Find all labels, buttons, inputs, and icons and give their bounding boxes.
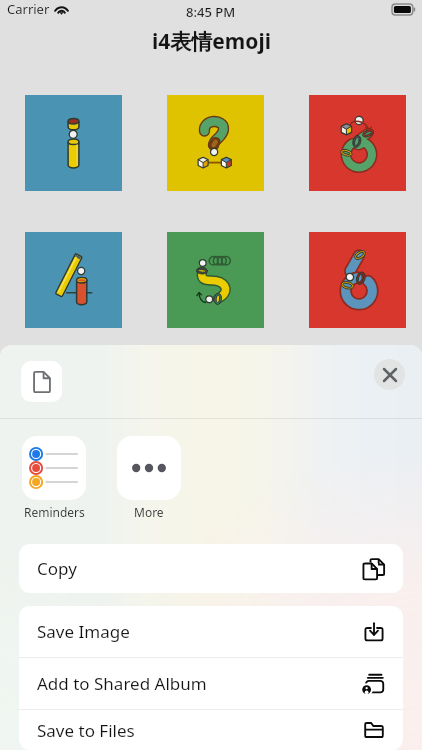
button[interactable]: Save to Files: [19, 710, 403, 750]
button[interactable]: [117, 436, 181, 500]
button[interactable]: [167, 232, 264, 328]
staticText: Copy: [37, 557, 77, 580]
button[interactable]: Close: [374, 359, 405, 390]
staticText: Add to Shared Album: [37, 672, 207, 695]
button[interactable]: Copy: [19, 544, 403, 593]
button[interactable]: Save Image: [19, 606, 403, 657]
button[interactable]: Document: [21, 361, 62, 402]
staticText: Save Image: [37, 620, 130, 643]
button[interactable]: [309, 95, 406, 191]
staticText: Carrier: [7, 0, 50, 18]
staticText: i4表情emoji: [152, 27, 271, 56]
staticText: Save to Files: [37, 719, 135, 742]
button[interactable]: [25, 232, 122, 328]
staticText: More: [134, 504, 164, 520]
staticText: Reminders: [24, 504, 85, 520]
button[interactable]: [22, 436, 86, 500]
staticText: 8:45 PM: [186, 3, 236, 21]
button[interactable]: Add to Shared Album: [19, 658, 403, 709]
button[interactable]: [309, 232, 406, 328]
button[interactable]: [25, 95, 122, 191]
button[interactable]: [167, 95, 264, 191]
